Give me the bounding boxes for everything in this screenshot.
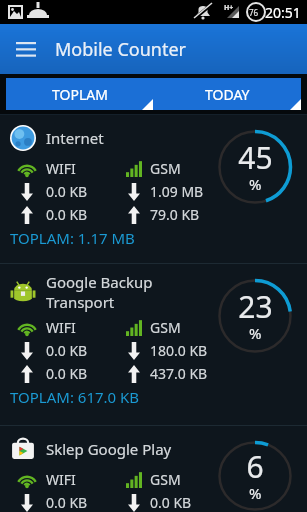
staticText: 0.0 KB xyxy=(46,493,88,512)
staticText: TODAY xyxy=(205,85,250,104)
button[interactable]: 6 xyxy=(0,426,307,512)
staticText: GSM xyxy=(150,159,181,178)
button[interactable]: TODAY xyxy=(153,78,301,110)
staticText: TOPLAM: 1.17 MB xyxy=(10,228,135,248)
staticText: GSM xyxy=(150,470,181,489)
staticText: 76 xyxy=(249,7,259,18)
staticText: 79.0 KB xyxy=(150,205,200,224)
staticText: 437.0 KB xyxy=(150,364,208,383)
staticText: 0.0 KB xyxy=(46,341,88,360)
staticText: 20:51 xyxy=(265,3,301,22)
staticText: H+ xyxy=(224,3,234,13)
staticText: GSM xyxy=(150,318,181,337)
staticText: Google Backup xyxy=(46,272,153,292)
staticText: 1.09 MB xyxy=(150,182,204,201)
button[interactable]: Open navigation drawer xyxy=(10,33,42,65)
button[interactable]: TOPLAM xyxy=(6,78,153,110)
staticText: Sklep Google Play xyxy=(46,439,172,459)
staticText: WIFI xyxy=(46,470,76,489)
staticText: 45 xyxy=(238,137,273,178)
staticText: 0.0 KB xyxy=(46,182,88,201)
staticText: WIFI xyxy=(46,159,76,178)
staticText: 6 xyxy=(246,446,264,487)
staticText: % xyxy=(249,174,262,194)
staticText: Mobile Counter xyxy=(55,37,187,62)
staticText: 180.0 KB xyxy=(150,341,208,360)
staticText: WIFI xyxy=(46,318,76,337)
staticText: 23 xyxy=(238,286,273,327)
staticText: Internet xyxy=(46,128,104,148)
staticText: 0.0 KB xyxy=(150,493,192,512)
staticText: 0.0 KB xyxy=(46,205,88,224)
button[interactable]: 23 xyxy=(0,264,307,425)
staticText: TOPLAM xyxy=(52,85,108,104)
staticText: TOPLAM: 617.0 KB xyxy=(10,387,140,407)
staticText: % xyxy=(249,323,262,343)
button[interactable]: 45 xyxy=(0,115,307,263)
staticText: % xyxy=(249,483,262,503)
staticText: Transport xyxy=(46,292,115,312)
staticText: 0.0 KB xyxy=(46,364,88,383)
